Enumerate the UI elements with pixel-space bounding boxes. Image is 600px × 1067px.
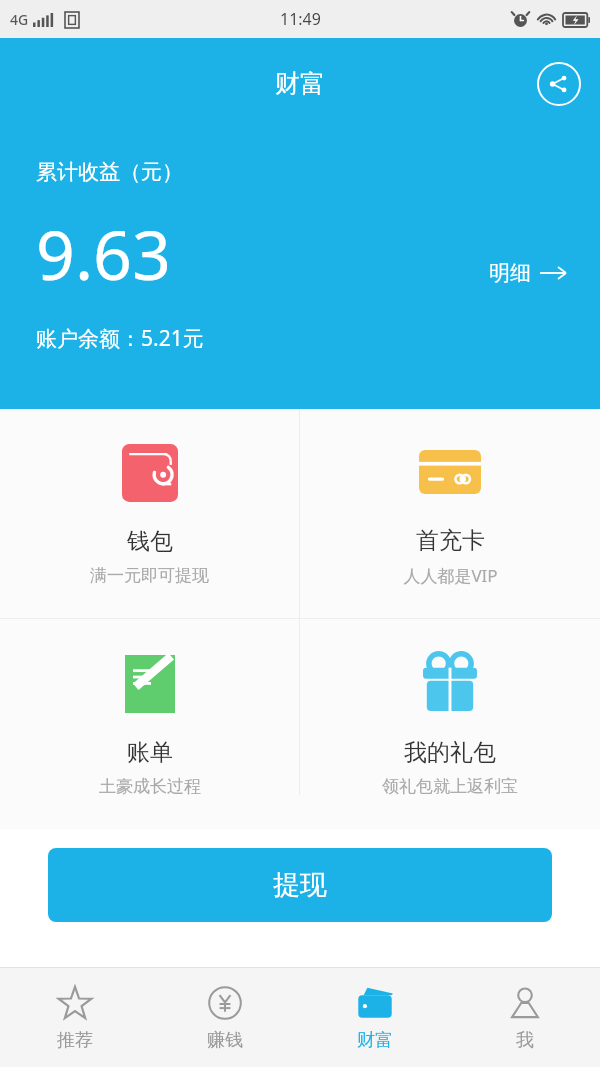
staticText: 财富 — [357, 1029, 393, 1052]
button[interactable]: 首充卡 — [300, 409, 600, 618]
staticText: 明细 — [489, 260, 531, 286]
button[interactable]: 我的礼包 — [300, 619, 600, 829]
staticText: 4G — [10, 10, 29, 29]
staticText: 11:49 — [280, 8, 321, 30]
staticText: 提现 — [273, 868, 327, 902]
staticText: 9.63 — [36, 207, 171, 300]
staticText: 推荐 — [57, 1029, 93, 1052]
button[interactable]: 我 — [450, 968, 600, 1067]
staticText: 满一元即可提现 — [90, 565, 209, 586]
staticText: 账户余额：5.21元 — [36, 324, 204, 353]
staticText: 人人都是VIP — [403, 564, 498, 587]
staticText: 首充卡 — [416, 526, 485, 555]
staticText: 我的礼包 — [404, 738, 496, 767]
staticText: 我 — [516, 1029, 534, 1052]
staticText: 赚钱 — [207, 1029, 243, 1052]
button[interactable]: 赚钱 — [150, 968, 300, 1067]
button[interactable]: Share — [536, 61, 582, 107]
staticText: 累计收益（元） — [36, 159, 183, 185]
button[interactable]: 账单 — [0, 619, 299, 829]
staticText: 土豪成长过程 — [99, 776, 201, 797]
staticText: 财富 — [275, 68, 325, 99]
button[interactable]: 明细 — [483, 254, 572, 292]
staticText: 账单 — [127, 738, 173, 767]
button[interactable]: 财富 — [300, 968, 450, 1067]
staticText: 钱包 — [127, 527, 173, 556]
button[interactable]: 钱包 — [0, 409, 299, 618]
button[interactable]: 提现 — [48, 848, 552, 922]
button[interactable]: 推荐 — [0, 968, 150, 1067]
staticText: 领礼包就上返利宝 — [382, 776, 518, 797]
